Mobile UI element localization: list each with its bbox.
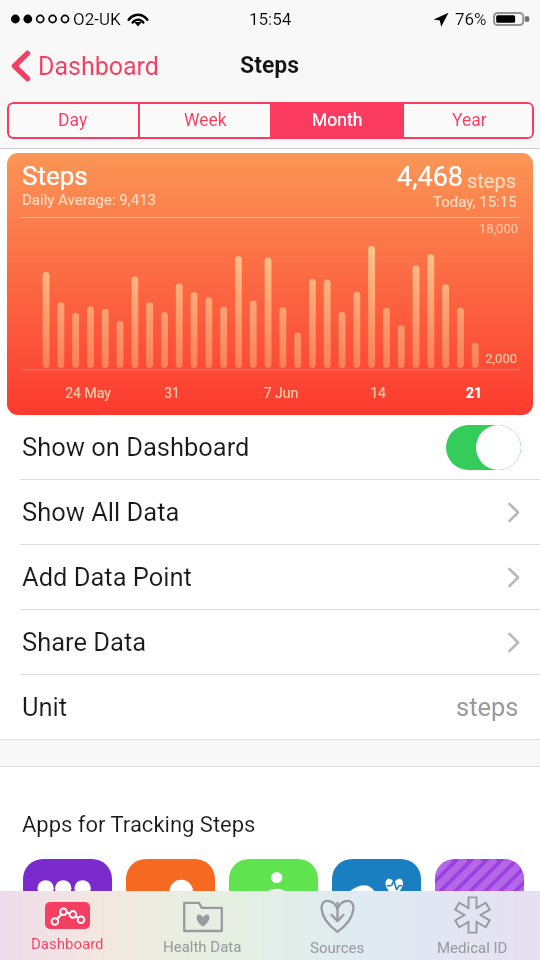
staticText: Day: [58, 110, 88, 131]
staticText: Today, 15:15: [433, 193, 517, 211]
staticText: Dashboard: [38, 52, 159, 81]
button[interactable]: Medical ID: [405, 891, 540, 960]
staticText: 2,000: [7, 351, 517, 366]
staticText: 31: [122, 385, 222, 401]
staticText: steps: [467, 169, 517, 192]
button[interactable]: Show on Dashboard: [0, 415, 540, 479]
staticText: Health Data: [163, 938, 242, 956]
staticText: Sources: [310, 939, 365, 957]
staticText: steps: [456, 692, 519, 722]
staticText: 76%: [455, 9, 487, 29]
staticText: 18,000: [7, 221, 518, 236]
staticText: Show on Dashboard: [22, 432, 250, 462]
button[interactable]: Health Data: [135, 891, 270, 960]
staticText: 14: [328, 385, 428, 401]
button[interactable]: App: [332, 859, 421, 948]
button[interactable]: Day: [7, 102, 138, 139]
staticText: Dashboard: [31, 935, 104, 953]
button[interactable]: Share Data: [0, 610, 540, 674]
button[interactable]: Month: [272, 102, 402, 139]
staticText: Add Data Point: [22, 562, 192, 592]
staticText: Show All Data: [22, 497, 180, 527]
button[interactable]: App: [126, 859, 215, 948]
staticText: Year: [452, 110, 487, 131]
button[interactable]: Dashboard: [0, 891, 135, 960]
staticText: Apps for Tracking Steps: [22, 812, 256, 838]
staticText: 21: [424, 385, 524, 401]
button[interactable]: Unit: [0, 675, 540, 739]
button[interactable]: Add Data Point: [0, 545, 540, 609]
button[interactable]: App: [23, 859, 112, 948]
staticText: Daily Average: 9,413: [22, 191, 157, 209]
staticText: Week: [184, 110, 227, 131]
staticText: Medical ID: [437, 939, 508, 957]
staticText: Month: [312, 110, 363, 131]
button[interactable]: Year: [404, 102, 534, 139]
staticText: Unit: [22, 692, 68, 722]
button[interactable]: Show All Data: [0, 480, 540, 544]
staticText: 15:54: [249, 9, 292, 29]
button[interactable]: Show on Dashboard toggle: [446, 425, 521, 470]
button[interactable]: Sources: [270, 891, 405, 960]
staticText: Share Data: [22, 627, 147, 657]
staticText: O2-UK: [73, 9, 121, 29]
staticText: Steps: [22, 161, 88, 191]
staticText: 24 May: [38, 385, 138, 401]
staticText: 7 Jun: [231, 385, 331, 401]
button[interactable]: App: [435, 859, 524, 948]
button[interactable]: App: [229, 859, 318, 948]
button[interactable]: Week: [140, 102, 270, 139]
button[interactable]: Dashboard: [0, 47, 165, 85]
staticText: 4,468: [397, 161, 464, 193]
staticText: Steps: [240, 52, 300, 79]
